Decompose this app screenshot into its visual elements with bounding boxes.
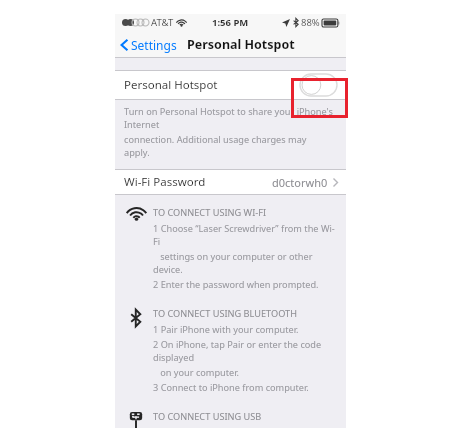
staticText: on your computer. [153,366,240,379]
staticText: 1 Choose “Laser Screwdriver” from the Wi… [153,222,340,248]
staticText: TO CONNECT USING USB [153,410,262,423]
staticText: Turn on Personal Hotspot to share your i… [124,105,334,131]
staticText: 3 Connect to iPhone from computer. [153,381,309,394]
staticText: TO CONNECT USING WI-FI [153,206,267,219]
staticText: Settings [131,37,177,53]
staticText: 1 Pair iPhone with your computer. [153,323,299,336]
staticText: settings on your computer or other devic… [153,250,340,276]
staticText: 2 On iPhone, tap Pair or enter the code … [153,338,340,364]
staticText: TO CONNECT USING BLUETOOTH [153,307,298,320]
button[interactable]: Personal Hotspot toggle [300,74,337,96]
staticText: Personal Hotspot [124,77,218,93]
staticText: Wi-Fi Password [124,174,206,190]
staticText: 1:56 PM [212,16,249,29]
button[interactable]: Personal Hotspot [115,70,346,100]
button[interactable]: Wi-Fi Password [115,169,346,195]
staticText: connection. Additional usage charges may… [124,133,334,159]
staticText: 88% [301,16,320,29]
button[interactable]: Settings [115,34,183,56]
staticText: 2 Enter the password when prompted. [153,278,319,291]
staticText: AT&T [151,16,174,29]
staticText: d0ctorwh0 [272,175,328,190]
staticText: Personal Hotspot [187,36,295,53]
